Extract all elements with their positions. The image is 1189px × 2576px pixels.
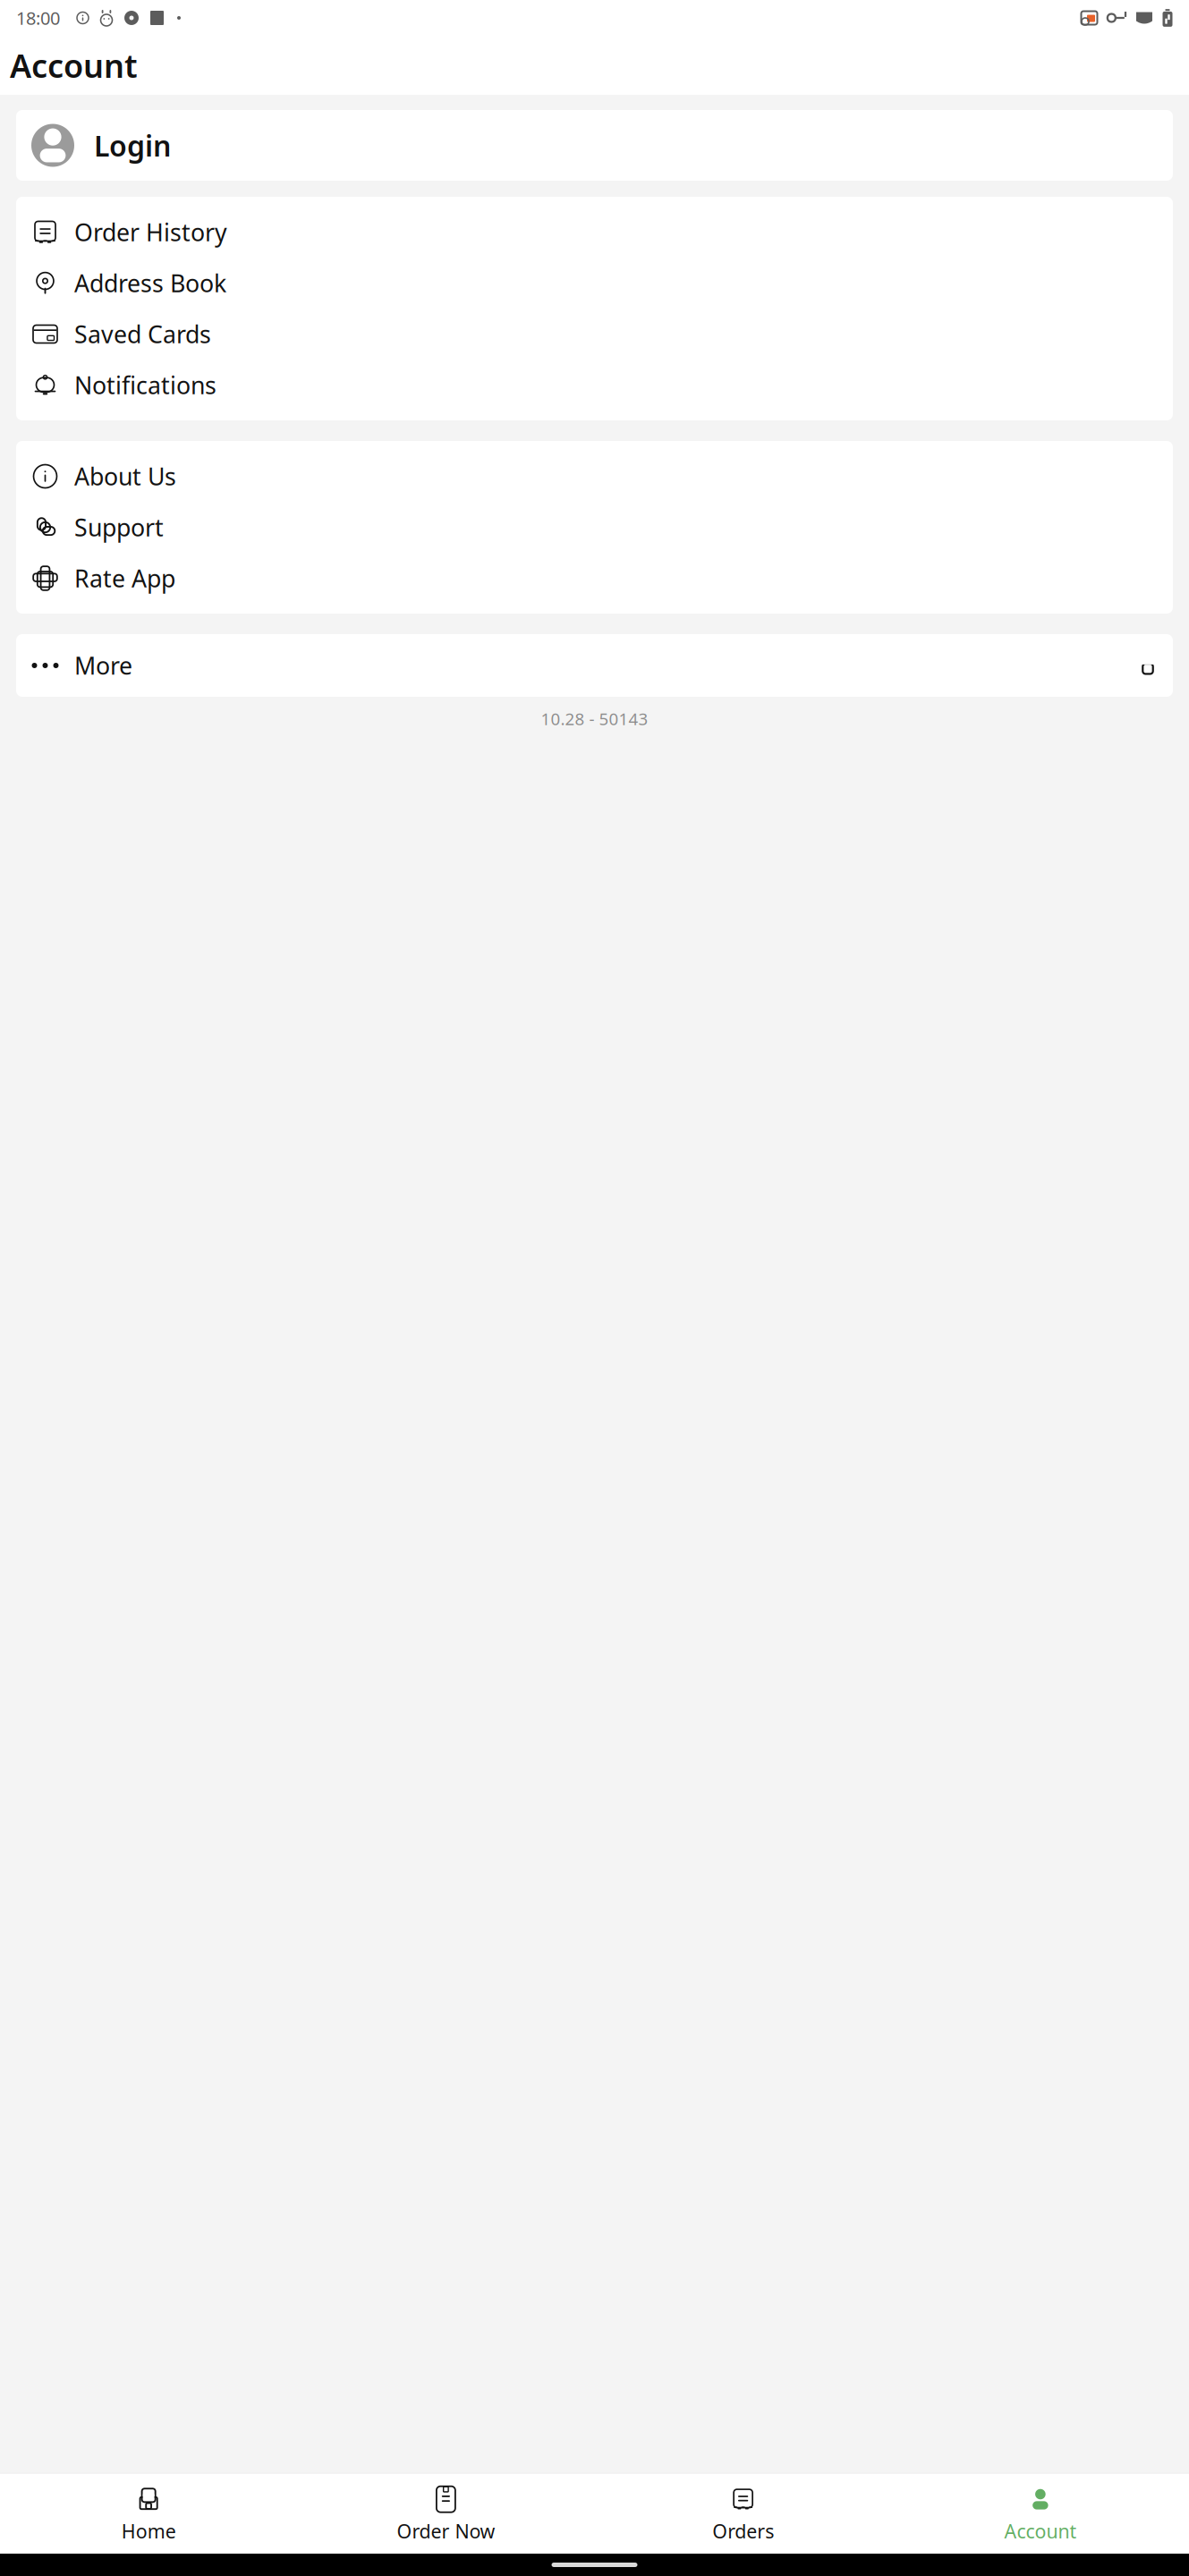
staticText: Notifications <box>74 369 217 401</box>
button[interactable]: Login <box>16 110 1173 181</box>
staticText: Order History <box>74 216 227 248</box>
staticText: Home <box>121 2518 176 2544</box>
button[interactable]: About Us <box>16 451 1173 502</box>
button[interactable]: Saved Cards <box>16 309 1173 360</box>
button[interactable]: Notifications <box>16 360 1173 411</box>
staticText: Support <box>74 511 164 543</box>
button[interactable]: Support <box>16 502 1173 553</box>
button[interactable]: Orders <box>594 2474 892 2554</box>
button[interactable]: Account <box>892 2474 1189 2554</box>
staticText: More <box>74 650 132 681</box>
staticText: 10.28 - 50143 <box>541 708 648 730</box>
button[interactable]: Order Now <box>297 2474 594 2554</box>
button[interactable]: Home <box>0 2474 297 2554</box>
staticText: Order Now <box>397 2518 495 2544</box>
button[interactable]: Order History <box>16 207 1173 258</box>
staticText: Orders <box>712 2518 774 2544</box>
staticText: About Us <box>74 460 176 492</box>
button[interactable]: Address Book <box>16 258 1173 309</box>
staticText: Login <box>94 126 171 164</box>
staticText: Account <box>10 44 138 87</box>
staticText: 18:00 <box>16 6 60 30</box>
staticText: Saved Cards <box>74 318 211 350</box>
staticText: Account <box>1004 2518 1077 2544</box>
staticText: Address Book <box>74 267 226 299</box>
staticText: Rate App <box>74 562 175 594</box>
button[interactable]: Rate App <box>16 553 1173 604</box>
button[interactable]: More <box>16 634 1173 697</box>
